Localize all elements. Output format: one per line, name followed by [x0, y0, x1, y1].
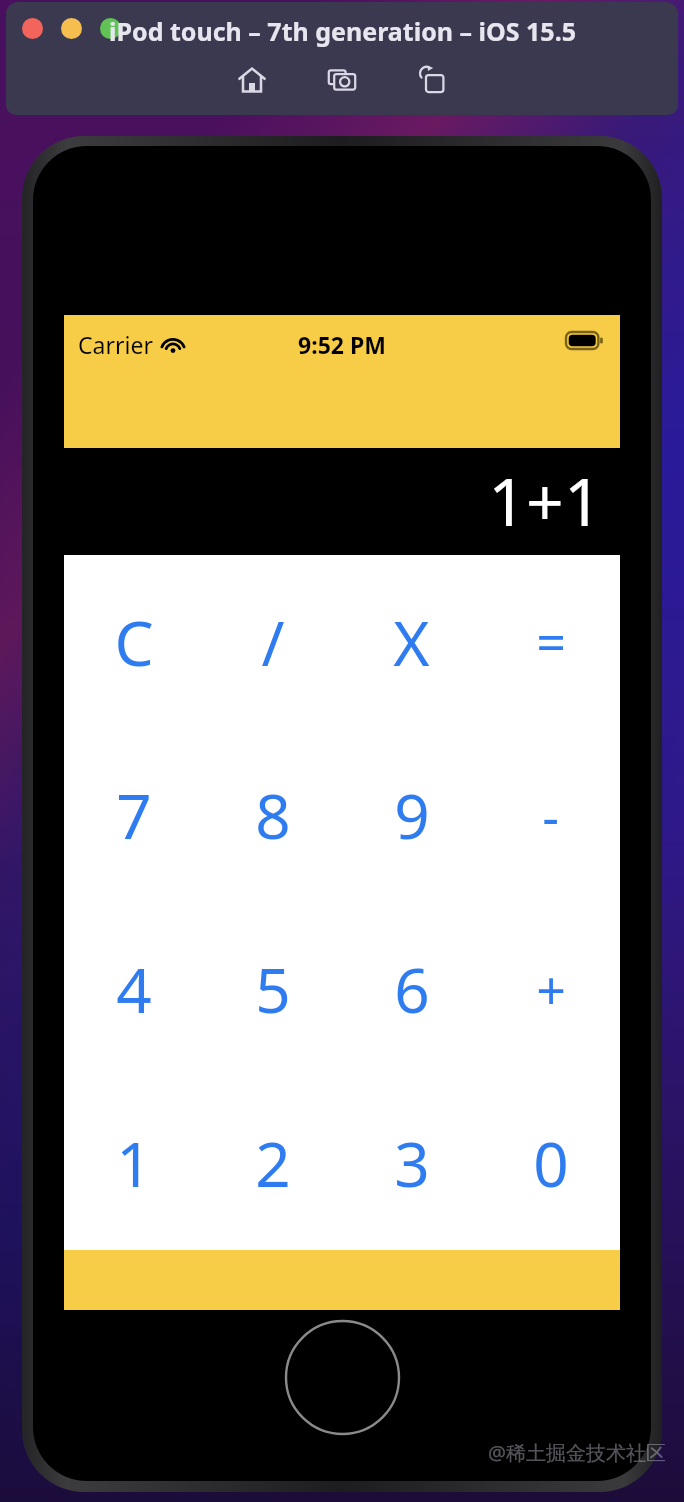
- staticText: C: [114, 600, 154, 684]
- staticText: -: [542, 780, 559, 851]
- staticText: 7: [116, 773, 152, 857]
- button[interactable]: X: [342, 555, 481, 728]
- button[interactable]: 6: [342, 902, 481, 1076]
- button[interactable]: 2: [203, 1076, 342, 1250]
- button[interactable]: Rotate: [411, 59, 453, 101]
- button[interactable]: Screenshot: [321, 59, 363, 101]
- staticText: 4: [116, 947, 152, 1031]
- button[interactable]: 8: [203, 728, 342, 902]
- staticText: 8: [255, 773, 291, 857]
- button[interactable]: =: [481, 555, 620, 728]
- staticText: 9:52 PM: [298, 329, 386, 360]
- button[interactable]: +: [481, 902, 620, 1076]
- staticText: X: [393, 600, 430, 684]
- staticText: 1: [116, 1121, 152, 1205]
- button[interactable]: -: [481, 728, 620, 902]
- button[interactable]: 1: [64, 1076, 203, 1250]
- button[interactable]: Zoom: [100, 18, 121, 39]
- button[interactable]: 7: [64, 728, 203, 902]
- staticText: 0: [533, 1121, 569, 1205]
- button[interactable]: Close: [22, 18, 43, 39]
- staticText: 1+1: [488, 455, 602, 545]
- staticText: /: [261, 600, 285, 684]
- staticText: 9: [394, 773, 430, 857]
- staticText: +: [536, 954, 566, 1025]
- staticText: 3: [394, 1121, 430, 1205]
- button[interactable]: Home: [231, 59, 273, 101]
- staticText: @稀土掘金技术社区: [488, 1439, 666, 1466]
- staticText: Carrier: [78, 329, 153, 360]
- button[interactable]: 4: [64, 902, 203, 1076]
- staticText: 2: [255, 1121, 291, 1205]
- button[interactable]: Minimise: [61, 18, 82, 39]
- button[interactable]: Home button: [284, 1319, 401, 1436]
- staticText: iPod touch – 7th generation – iOS 15.5: [109, 14, 576, 48]
- staticText: 5: [255, 947, 291, 1031]
- button[interactable]: 3: [342, 1076, 481, 1250]
- button[interactable]: C: [64, 555, 203, 728]
- button[interactable]: 9: [342, 728, 481, 902]
- staticText: =: [536, 606, 566, 677]
- button[interactable]: 5: [203, 902, 342, 1076]
- button[interactable]: /: [203, 555, 342, 728]
- button[interactable]: 0: [481, 1076, 620, 1250]
- staticText: 6: [394, 947, 430, 1031]
